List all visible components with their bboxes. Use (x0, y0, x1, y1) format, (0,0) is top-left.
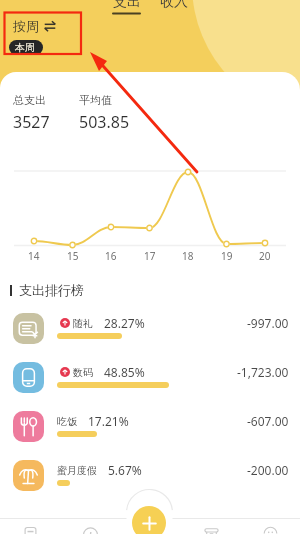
staticText: 48.85% (104, 364, 145, 380)
staticText: 503.85 (79, 111, 130, 133)
staticText: 19 (221, 249, 233, 263)
staticText: 5.67% (108, 462, 142, 478)
staticText: 16 (105, 249, 117, 263)
button[interactable]: 随礼 (13, 313, 44, 344)
staticText: -997.00 (247, 315, 289, 331)
staticText: 18 (182, 249, 194, 263)
staticText: 吃饭 (57, 415, 77, 428)
staticText: 按周 (13, 18, 39, 34)
staticText: 支出 (113, 0, 141, 11)
button[interactable]: Add record (132, 506, 166, 534)
staticText: 3527 (13, 111, 50, 133)
button[interactable]: 本周 (9, 40, 43, 55)
button[interactable]: Budget (198, 526, 224, 534)
button[interactable]: 数码 (13, 362, 44, 393)
staticText: 20 (259, 249, 271, 263)
staticText: 17.21% (88, 413, 129, 429)
button[interactable]: Statistics (77, 526, 103, 534)
button[interactable]: 收入 (160, 0, 188, 11)
staticText: 总支出 (13, 93, 46, 107)
staticText: -607.00 (247, 413, 289, 429)
button[interactable]: Bills (17, 526, 43, 534)
other: Switch period (44, 20, 56, 32)
staticText: -200.00 (247, 462, 289, 478)
button[interactable]: Profile (257, 526, 283, 534)
staticText: 15 (67, 249, 79, 263)
staticText: 随礼 (73, 317, 93, 330)
staticText: 支出排行榜 (19, 282, 84, 298)
button[interactable]: 按周 (13, 18, 56, 34)
staticText: 收入 (160, 0, 188, 11)
staticText: 数码 (73, 366, 93, 379)
staticText: 本周 (15, 41, 35, 54)
staticText: 蜜月度假 (57, 464, 97, 477)
staticText: 28.27% (104, 315, 145, 331)
button[interactable]: 支出 (113, 0, 141, 11)
button[interactable]: 蜜月度假 (13, 460, 44, 491)
staticText: 14 (28, 249, 40, 263)
staticText: 平均值 (79, 93, 112, 107)
button[interactable]: 吃饭 (13, 411, 44, 442)
staticText: -1,723.00 (237, 364, 289, 380)
staticText: 17 (144, 249, 156, 263)
